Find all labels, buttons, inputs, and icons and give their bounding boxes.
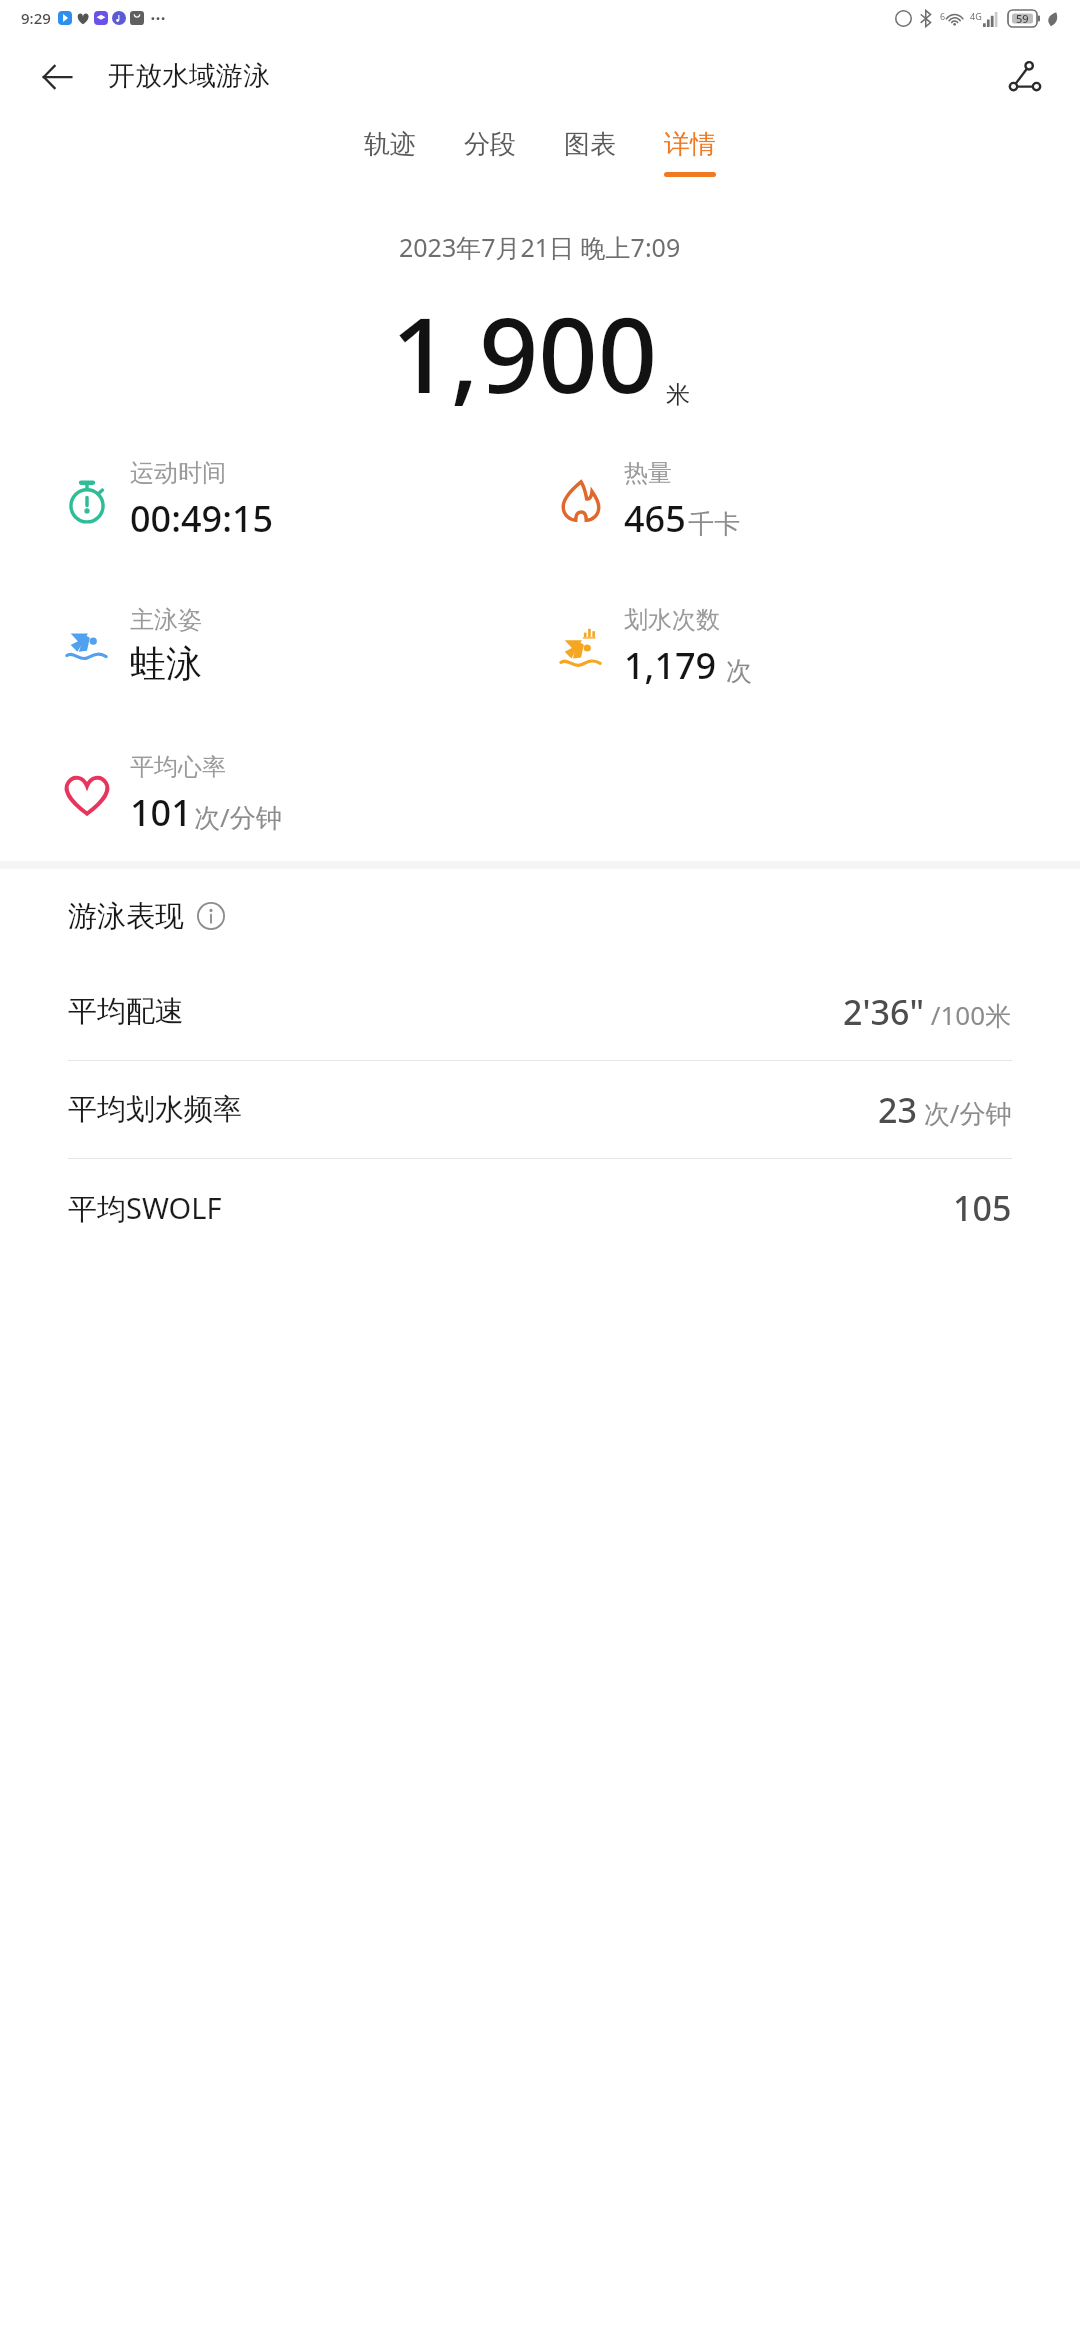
button[interactable]: 分段 [440, 124, 540, 181]
button[interactable]: 平均配速 [0, 963, 1080, 1061]
staticText: 米 [666, 380, 690, 410]
staticText: 蛙泳 [130, 641, 202, 686]
staticText: 59 [1016, 11, 1029, 26]
staticText: 6 [940, 10, 946, 22]
staticText: 开放水域游泳 [108, 59, 270, 93]
staticText: 次 [719, 652, 752, 688]
staticText: 9:29 [21, 8, 51, 28]
staticText: 主泳姿 [130, 605, 202, 635]
button[interactable]: 热量 [552, 458, 740, 543]
staticText: 详情 [664, 128, 716, 161]
staticText: 分段 [464, 128, 516, 161]
staticText: 热量 [624, 458, 672, 488]
staticText: 4G [970, 10, 982, 22]
staticText: 图表 [564, 128, 616, 161]
staticText: 1,179 [624, 641, 717, 690]
staticText: 00:49:15 [130, 494, 274, 543]
button[interactable]: 轨迹 [340, 124, 440, 181]
staticText: 23 [878, 1087, 917, 1133]
staticText: 2'36" [843, 989, 924, 1035]
button[interactable]: Back [30, 50, 84, 104]
button[interactable]: 运动时间 [58, 458, 274, 543]
staticText: 轨迹 [364, 128, 416, 161]
staticText: 平均SWOLF [68, 1188, 222, 1228]
button[interactable]: 平均SWOLF [0, 1159, 1080, 1256]
button[interactable]: 划水次数 [552, 605, 752, 690]
staticText: 划水次数 [624, 605, 720, 635]
staticText: /100米 [924, 997, 1012, 1033]
staticText: 平均配速 [68, 993, 184, 1030]
button[interactable]: 平均划水频率 [0, 1061, 1080, 1159]
staticText: 101 [130, 788, 192, 837]
staticText: 105 [953, 1185, 1012, 1231]
staticText: 平均划水频率 [68, 1091, 242, 1128]
button[interactable]: Share [996, 48, 1054, 106]
staticText: 次/分钟 [194, 799, 282, 835]
button[interactable]: 详情 [640, 124, 740, 181]
staticText: 千卡 [688, 508, 740, 541]
staticText: 次/分钟 [917, 1095, 1012, 1131]
button[interactable]: 平均心率 [58, 752, 282, 837]
staticText: 运动时间 [130, 458, 226, 488]
button[interactable]: Info [194, 899, 228, 933]
staticText: 1,900 [391, 282, 658, 424]
button[interactable]: 图表 [540, 124, 640, 181]
staticText: 平均心率 [130, 752, 226, 782]
staticText: 465 [624, 494, 686, 543]
staticText: 游泳表现 [68, 898, 184, 935]
button[interactable]: 主泳姿 [58, 605, 202, 686]
staticText: 2023年7月21日 晚上7:09 [399, 230, 681, 264]
